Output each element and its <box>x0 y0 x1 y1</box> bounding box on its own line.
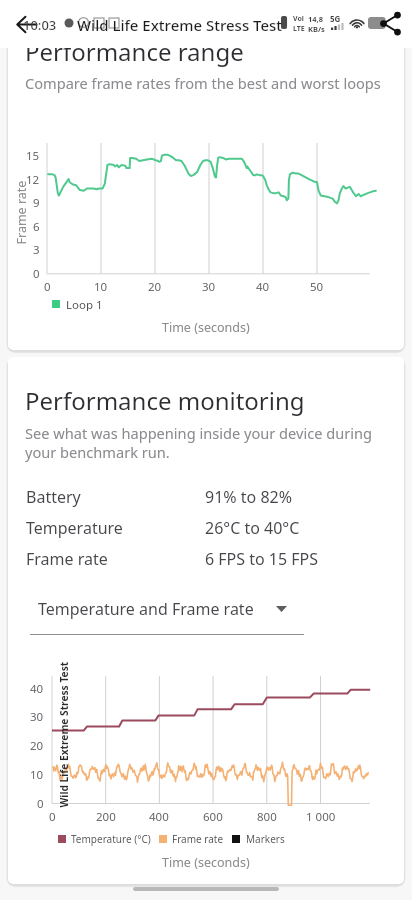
staticText: 0 <box>49 809 56 825</box>
staticText: 6 FPS to 15 FPS <box>205 548 319 570</box>
staticText: 12 <box>26 172 40 188</box>
staticText: Frame rate <box>26 548 108 570</box>
staticText: Performance range <box>25 35 244 68</box>
staticText: 91% to 82% <box>205 486 292 508</box>
button[interactable]: Temperature and Frame rate <box>30 594 304 635</box>
staticText: 30 <box>30 709 44 725</box>
staticText: 9 <box>33 195 40 211</box>
staticText: 600 <box>203 809 223 825</box>
staticText: KB/s <box>308 24 325 34</box>
staticText: 5G <box>330 13 341 24</box>
staticText: 10 <box>30 767 44 783</box>
staticText: 3 <box>33 242 40 258</box>
staticText: 50 <box>310 279 324 295</box>
staticText: Time (seconds) <box>162 319 250 336</box>
staticText: Loop 1 <box>66 297 103 311</box>
staticText: Time (seconds) <box>162 854 250 871</box>
staticText: 0 <box>37 796 44 812</box>
staticText: 400 <box>149 809 169 825</box>
staticText: Compare frame rates from the best and wo… <box>25 73 381 93</box>
staticText: See what was happening inside your devic… <box>25 423 372 462</box>
staticText: Battery <box>26 486 81 508</box>
button[interactable]: Battery <box>8 481 404 512</box>
staticText: Performance monitoring <box>25 384 305 417</box>
staticText: Wild Life Extreme Stress Test <box>56 661 70 807</box>
button[interactable]: Temperature <box>8 512 404 543</box>
staticText: Frame rate <box>12 180 29 244</box>
staticText: 1 000 <box>306 809 336 825</box>
staticText: Temperature and Frame rate <box>38 598 254 620</box>
staticText: 15 <box>26 148 40 164</box>
staticText: 40 <box>256 279 270 295</box>
staticText: 6 <box>33 219 40 235</box>
staticText: Temperature (°C) <box>71 832 151 846</box>
button[interactable]: Back <box>2 0 50 48</box>
staticText: 20 <box>148 279 162 295</box>
staticText: 14,8 <box>308 14 324 24</box>
staticText: Markers <box>246 832 285 846</box>
staticText: Vol <box>293 14 304 24</box>
staticText: 40 <box>30 681 44 697</box>
staticText: Temperature <box>26 517 123 539</box>
staticText: LTE <box>293 24 305 34</box>
staticText: 0 <box>44 279 51 295</box>
staticText: 20 <box>30 738 44 754</box>
staticText: 0 <box>33 266 40 282</box>
staticText: 10 <box>94 279 108 295</box>
staticText: 200 <box>96 809 116 825</box>
staticText: Frame rate <box>172 832 224 846</box>
staticText: 30 <box>202 279 216 295</box>
staticText: 26°C to 40°C <box>205 517 300 539</box>
staticText: Wild Life Extreme Stress Test <box>77 15 283 35</box>
staticText: 800 <box>257 809 277 825</box>
button[interactable]: Frame rate <box>8 543 404 574</box>
staticText: 10:03 <box>23 16 57 34</box>
button[interactable]: Share <box>369 2 412 45</box>
